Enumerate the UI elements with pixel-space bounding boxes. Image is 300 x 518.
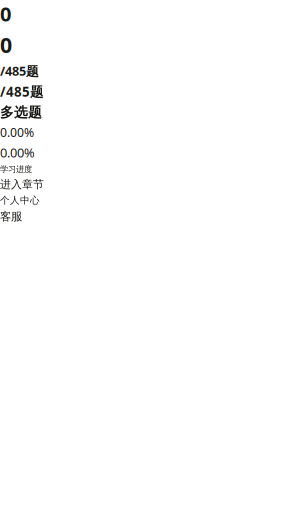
staticText: 0.00% <box>0 124 34 141</box>
staticText: 0.00% <box>0 144 35 161</box>
staticText: 进入章节 <box>0 178 44 191</box>
staticText: 0 <box>0 0 11 27</box>
staticText: 0 <box>0 30 12 59</box>
staticText: 多选题 <box>0 104 42 121</box>
staticText: 客服 <box>0 209 22 224</box>
staticText: /485题 <box>0 62 39 80</box>
staticText: /485题 <box>0 82 43 101</box>
staticText: 个人中心 <box>0 194 40 206</box>
staticText: 学习进度 <box>0 164 32 174</box>
